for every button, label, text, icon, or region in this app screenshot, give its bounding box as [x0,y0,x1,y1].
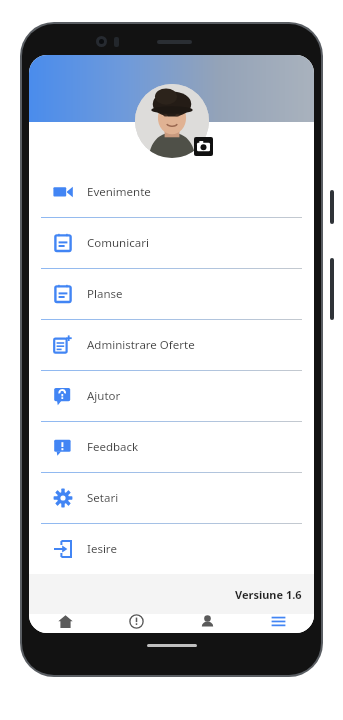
button[interactable]: Profil [172,614,243,633]
staticText: Administrare Oferte [87,337,195,353]
button[interactable]: Change profile photo [194,137,213,156]
staticText: Setari [87,490,119,506]
staticText: Evenimente [87,184,151,200]
button[interactable]: Setari [29,473,314,523]
button[interactable]: Home [29,614,101,633]
staticText: Planse [87,286,123,302]
button[interactable]: Evenimente [29,167,314,217]
button[interactable]: Iesire [29,524,314,574]
staticText: Ajutor [87,388,121,404]
staticText: Feedback [87,439,139,455]
button[interactable]: Comunicari [29,218,314,268]
button[interactable]: Feedback [29,422,314,472]
staticText: Versiune 1.6 [235,587,302,602]
button[interactable]: Planse [29,269,314,319]
button[interactable]: Ajutor [29,371,314,421]
button[interactable]: Administrare Oferte [29,320,314,370]
button[interactable]: Info Util [101,614,172,633]
button[interactable]: Meniu [243,614,314,633]
staticText: Iesire [87,541,117,557]
staticText: Comunicari [87,235,149,251]
